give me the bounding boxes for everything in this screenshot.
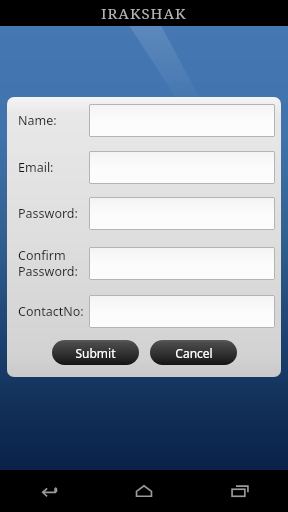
staticText: Confirm Password: [18, 247, 78, 279]
staticText: Submit [75, 345, 116, 361]
button[interactable]: Cancel [150, 340, 237, 365]
button[interactable]: Password: input [89, 197, 275, 230]
button[interactable]: Email: input [89, 151, 275, 184]
button[interactable]: Back [0, 470, 96, 512]
staticText: Email: [18, 159, 54, 176]
button[interactable]: Confirm Password: input [89, 247, 275, 280]
staticText: IRAKSHAK [101, 3, 187, 23]
button[interactable]: Submit [52, 340, 139, 365]
staticText: ContactNo: [18, 303, 84, 320]
button[interactable]: ContactNo: input [89, 295, 275, 328]
button[interactable]: Name: input [89, 104, 275, 137]
staticText: Password: [18, 205, 78, 222]
staticText: Name: [18, 112, 57, 129]
staticText: Cancel [175, 345, 213, 361]
button[interactable]: Recent apps [192, 470, 288, 512]
button[interactable]: Home [96, 470, 192, 512]
